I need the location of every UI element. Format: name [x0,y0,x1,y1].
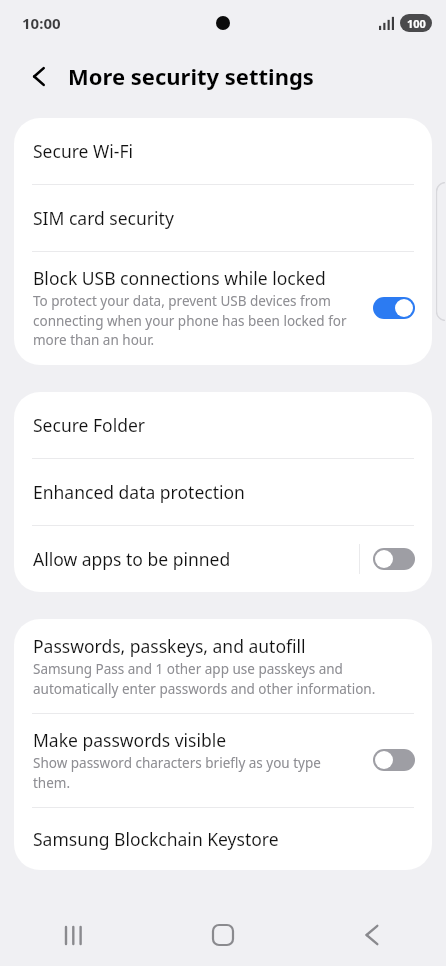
button[interactable]: Back [22,59,56,93]
staticText: Samsung Blockchain Keystore [33,827,279,851]
button[interactable]: SIM card security [14,185,432,251]
staticText: 10:00 [22,13,61,33]
button[interactable]: Back [297,904,446,966]
button[interactable]: Allow apps to be pinned [14,526,432,592]
staticText: Make passwords visible [33,728,227,752]
button[interactable]: Make passwords visible [14,714,432,807]
button[interactable]: Toggle [373,749,415,771]
staticText: Secure Wi-Fi [33,139,134,163]
button[interactable]: Secure Wi-Fi [14,118,432,184]
button[interactable]: Secure Folder [14,392,432,458]
staticText: Block USB connections while locked [33,266,326,290]
staticText: Enhanced data protection [33,480,245,504]
staticText: Show password characters briefly as you … [33,754,359,792]
staticText: Allow apps to be pinned [33,547,359,571]
button[interactable]: Toggle [373,548,415,570]
button[interactable]: Passwords, passkeys, and autofill [14,619,432,713]
button[interactable]: Enhanced data protection [14,459,432,525]
staticText: To protect your data, prevent USB device… [33,292,359,349]
staticText: Samsung Pass and 1 other app use passkey… [33,660,413,698]
button[interactable]: Samsung Blockchain Keystore [14,808,432,870]
staticText: 100 [407,16,426,31]
button[interactable]: Home [148,904,297,966]
staticText: Passwords, passkeys, and autofill [33,634,306,658]
staticText: More security settings [68,61,314,91]
button[interactable]: Recents [0,904,148,966]
staticText: SIM card security [33,206,174,230]
button[interactable]: Block USB connections while locked [14,252,432,365]
staticText: Secure Folder [33,413,146,437]
button[interactable]: Toggle [373,297,415,319]
